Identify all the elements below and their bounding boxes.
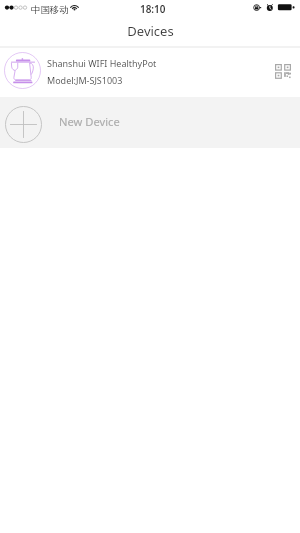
staticText: Model:JM-SJS1003 (47, 74, 123, 86)
staticText: Devices (127, 22, 174, 40)
staticText: New Device (59, 114, 120, 129)
button[interactable]: Shanshui WIFI HealthyPot (0, 48, 300, 97)
staticText: Shanshui WIFI HealthyPot (47, 57, 157, 69)
button[interactable]: New Device (0, 97, 300, 148)
staticText: 中国移动 (31, 4, 69, 16)
staticText: 18:10 (140, 2, 166, 15)
button[interactable]: Scan QR code (265, 48, 300, 97)
